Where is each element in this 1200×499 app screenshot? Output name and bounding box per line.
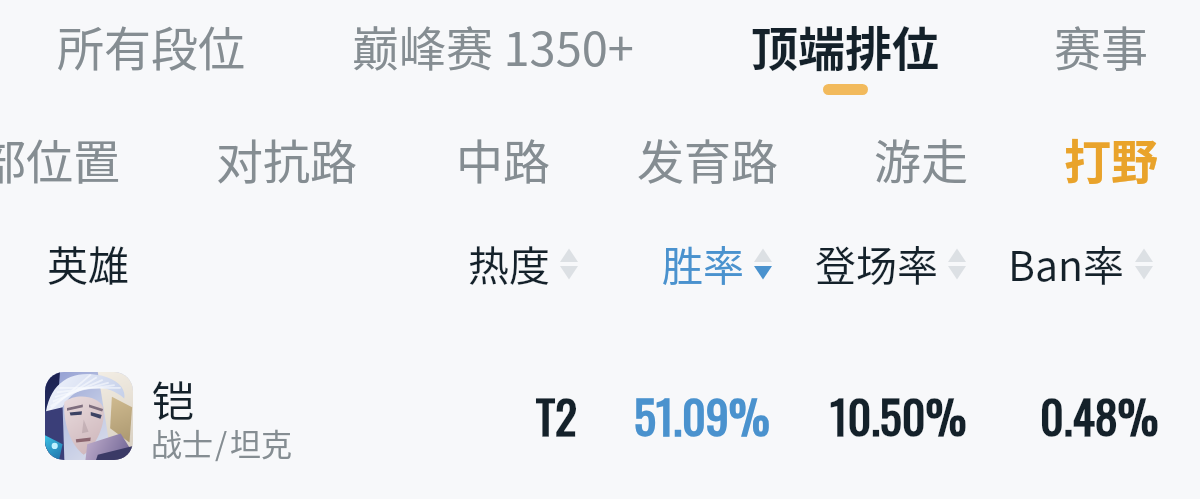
button[interactable]: 登场率 [815, 233, 966, 292]
staticText: 0.48% [1040, 381, 1159, 449]
button[interactable]: 赛事 [1054, 11, 1148, 79]
staticText: 打野 [1064, 124, 1158, 192]
staticText: 战士 [151, 420, 213, 465]
button[interactable]: 胜率 [662, 233, 772, 292]
other: Sort by 登场率 [948, 237, 966, 289]
staticText: 巅峰赛 1350+ [352, 11, 634, 79]
staticText: 顶端排位 [751, 11, 939, 79]
button[interactable]: 英雄 [47, 233, 129, 292]
button[interactable]: 游走 [874, 124, 968, 192]
staticText: 登场率 [815, 233, 938, 292]
staticText: 对抗路 [216, 124, 357, 192]
staticText: 坦克 [230, 420, 292, 465]
button[interactable]: 铠 战士/坦克 T2 胜率 51.09% [0, 348, 1200, 486]
button[interactable]: 所有段位 [57, 11, 245, 79]
button[interactable]: 顶端排位 [751, 11, 939, 79]
button[interactable]: 中路 [456, 124, 550, 192]
staticText: 赛事 [1054, 11, 1148, 79]
staticText: 发育路 [637, 124, 778, 192]
staticText: 中路 [456, 124, 550, 192]
button[interactable]: 对抗路 [216, 124, 357, 192]
button[interactable]: 巅峰赛 1350+ [352, 11, 634, 79]
other: Sort by 胜率 [754, 237, 772, 289]
button[interactable]: 全部位置 [0, 124, 120, 192]
staticText: 铠 [152, 368, 195, 429]
staticText: 全部位置 [0, 124, 120, 192]
other: 铠 hero portrait [45, 372, 133, 460]
other: Sort by 热度 [560, 237, 578, 289]
other: Sort by Ban率 [1135, 237, 1153, 289]
staticText: 游走 [874, 124, 968, 192]
staticText: T2 [536, 381, 577, 449]
staticText: 胜率 [662, 233, 744, 292]
staticText: 51.09% [634, 381, 770, 449]
button[interactable]: 发育路 [637, 124, 778, 192]
staticText: 所有段位 [57, 11, 245, 79]
staticText: / [215, 420, 228, 465]
button[interactable]: Ban率 [1008, 233, 1153, 292]
button[interactable]: 打野 [1064, 124, 1158, 192]
staticText: Ban率 [1008, 233, 1125, 292]
staticText: 英雄 [47, 233, 129, 292]
staticText: 10.50% [830, 381, 967, 449]
staticText: 热度 [468, 233, 550, 292]
button[interactable]: 热度 [468, 233, 578, 292]
